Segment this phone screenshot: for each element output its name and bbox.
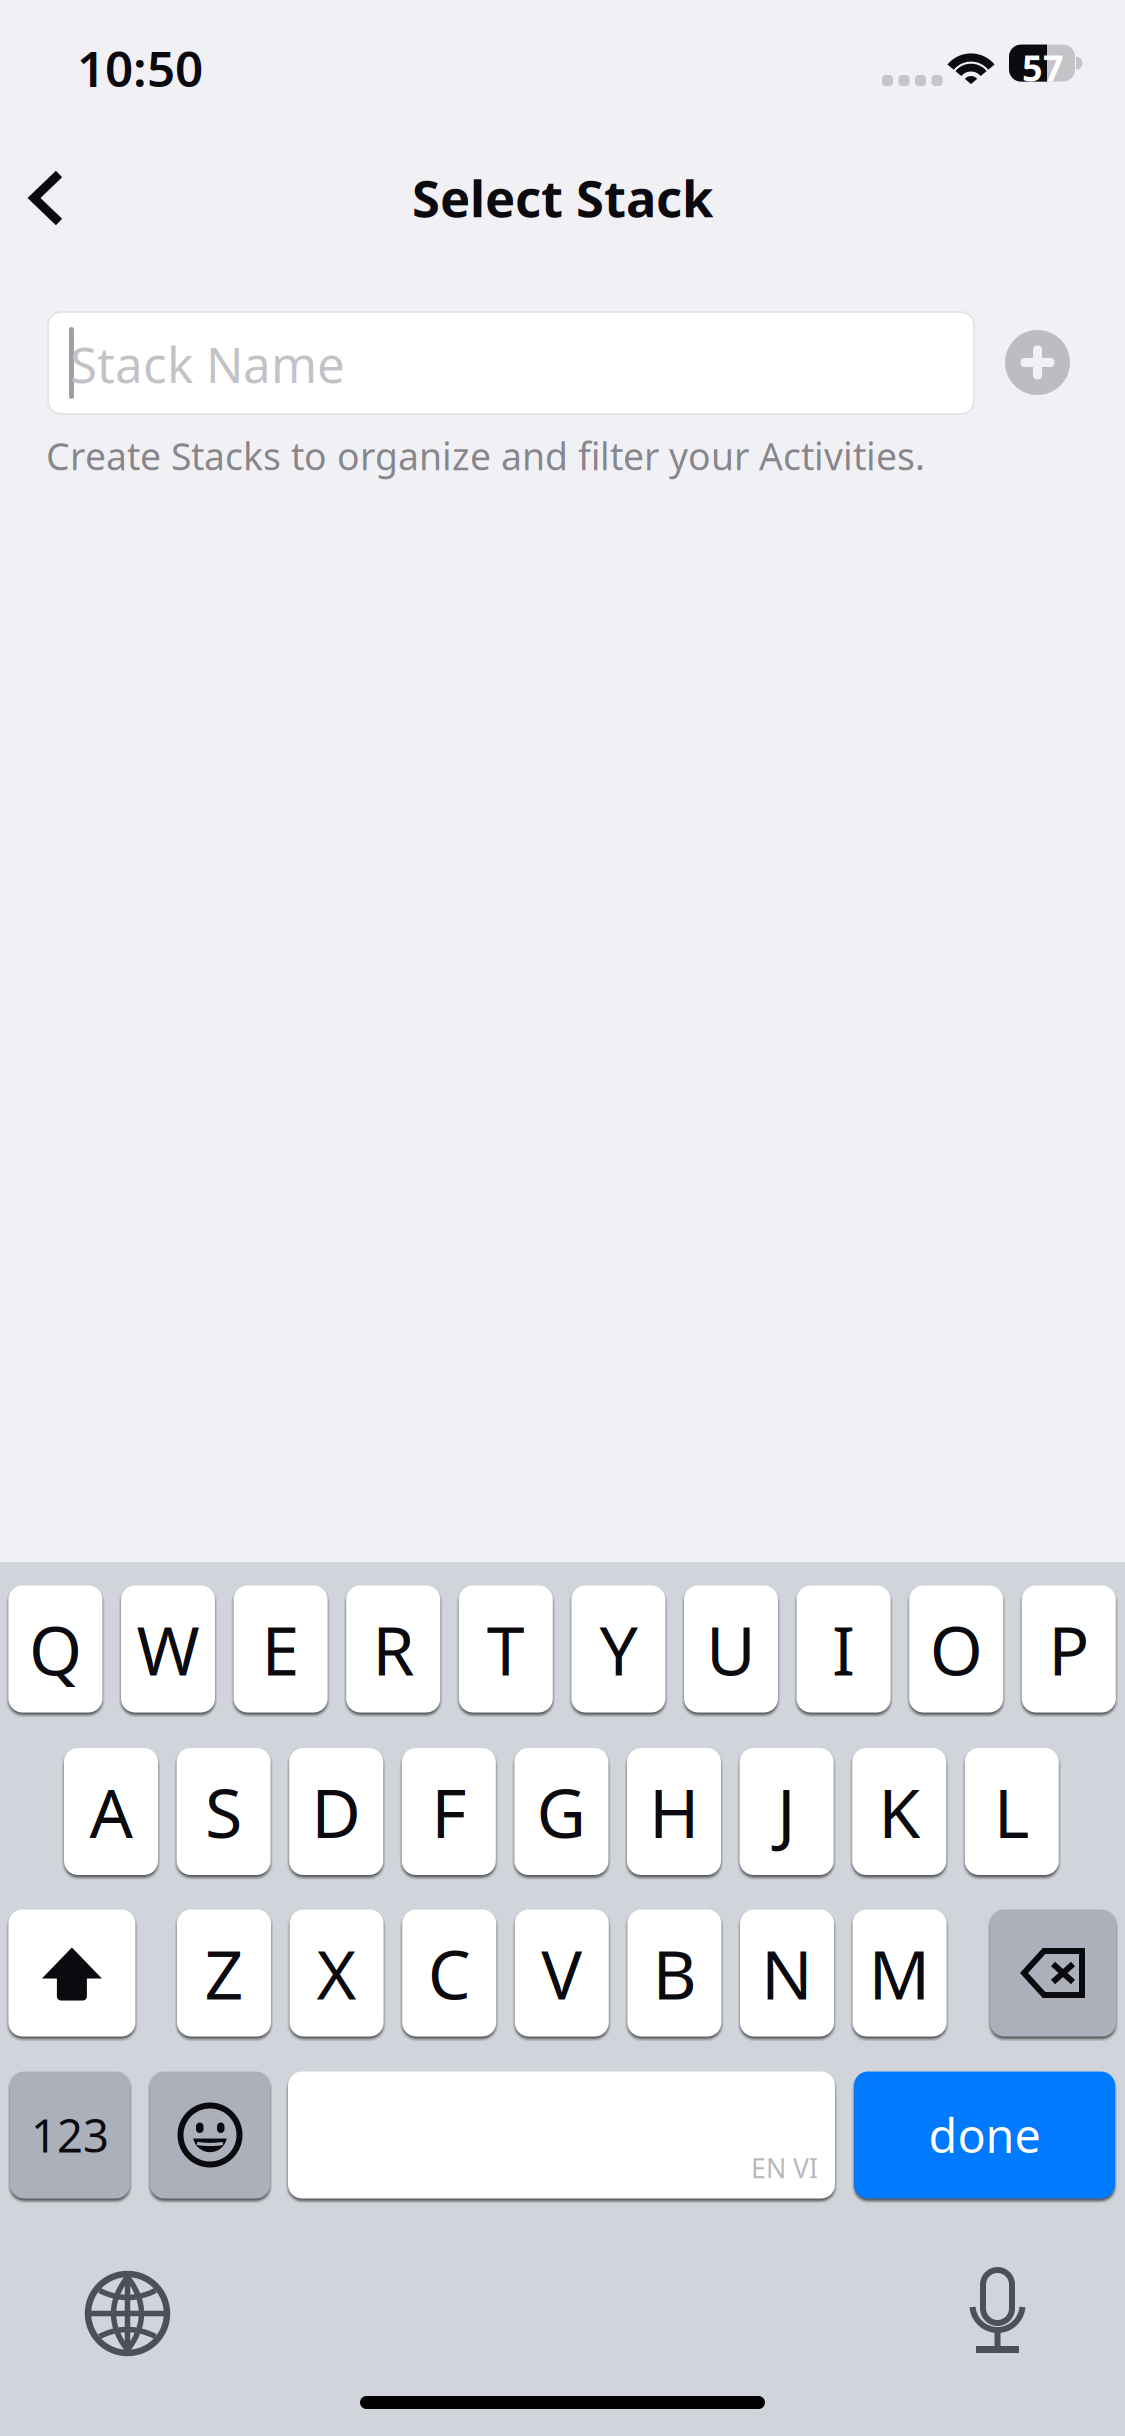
staticText: 123 xyxy=(31,2105,109,2165)
button[interactable]: Emoji xyxy=(150,2070,270,2200)
staticText: T xyxy=(487,1604,525,1694)
staticText: A xyxy=(89,1766,132,1857)
staticText: B xyxy=(652,1928,696,2018)
button[interactable]: U xyxy=(684,1584,778,1714)
staticText: X xyxy=(317,1928,357,2018)
staticText: C xyxy=(428,1928,471,2018)
staticText: R xyxy=(372,1604,414,1694)
staticText: done xyxy=(928,2104,1040,2166)
staticText: N xyxy=(761,1928,813,2018)
button[interactable]: R xyxy=(346,1584,440,1714)
staticText: Z xyxy=(204,1928,243,2018)
button[interactable]: G xyxy=(514,1746,608,1876)
staticText: P xyxy=(1048,1604,1089,1694)
button[interactable]: Dictate xyxy=(967,2269,1029,2355)
button[interactable]: I xyxy=(797,1584,891,1714)
staticText: D xyxy=(311,1766,361,1857)
button[interactable]: M xyxy=(853,1908,947,2038)
button[interactable]: W xyxy=(121,1584,215,1714)
button[interactable]: K xyxy=(852,1746,946,1876)
button[interactable]: J xyxy=(740,1746,834,1876)
staticText: W xyxy=(136,1604,199,1694)
button[interactable]: space xyxy=(288,2070,835,2200)
button[interactable]: P xyxy=(1022,1584,1116,1714)
staticText: L xyxy=(994,1766,1030,1857)
staticText: Select Stack xyxy=(412,164,713,231)
staticText: Q xyxy=(29,1604,82,1694)
button[interactable]: Numbers xyxy=(10,2070,130,2200)
button[interactable]: B xyxy=(627,1908,721,2038)
staticText: E xyxy=(262,1604,300,1694)
staticText: Create Stacks to organize and filter you… xyxy=(46,431,925,481)
staticText: Y xyxy=(599,1604,637,1694)
button[interactable]: F xyxy=(402,1746,496,1876)
staticText: EN VI xyxy=(751,2150,818,2185)
staticText: Stack Name xyxy=(70,331,345,396)
button[interactable]: D xyxy=(289,1746,383,1876)
button[interactable]: H xyxy=(627,1746,721,1876)
staticText: V xyxy=(541,1928,582,2018)
button[interactable]: done xyxy=(854,2070,1115,2200)
staticText: F xyxy=(431,1766,466,1857)
staticText: G xyxy=(536,1766,586,1857)
staticText: 57 xyxy=(1022,44,1064,91)
button[interactable]: A xyxy=(64,1746,158,1876)
button[interactable]: Add stack xyxy=(1005,330,1070,395)
button[interactable]: X xyxy=(290,1908,384,2038)
button[interactable]: Z xyxy=(177,1908,271,2038)
button[interactable]: V xyxy=(515,1908,609,2038)
staticText: J xyxy=(777,1766,796,1857)
button[interactable]: O xyxy=(909,1584,1003,1714)
button[interactable]: Y xyxy=(571,1584,665,1714)
button[interactable]: T xyxy=(459,1584,553,1714)
button[interactable]: C xyxy=(402,1908,496,2038)
button[interactable]: Next keyboard xyxy=(88,2274,167,2353)
button[interactable]: E xyxy=(234,1584,328,1714)
button[interactable]: Q xyxy=(8,1584,102,1714)
button[interactable]: Delete xyxy=(990,1908,1116,2038)
staticText: K xyxy=(878,1766,920,1857)
button[interactable]: Back xyxy=(0,143,108,251)
staticText: S xyxy=(205,1766,242,1857)
staticText: O xyxy=(930,1604,983,1694)
button[interactable]: N xyxy=(740,1908,834,2038)
button[interactable]: Shift xyxy=(8,1908,135,2038)
button[interactable]: S xyxy=(177,1746,271,1876)
staticText: 10:50 xyxy=(77,35,203,100)
staticText: H xyxy=(649,1766,699,1857)
staticText: I xyxy=(832,1604,855,1694)
staticText: M xyxy=(869,1928,931,2018)
staticText: U xyxy=(706,1604,756,1694)
button[interactable]: L xyxy=(965,1746,1059,1876)
